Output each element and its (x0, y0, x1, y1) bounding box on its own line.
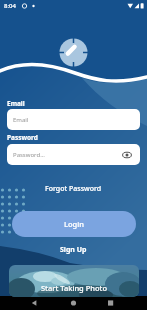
staticText: Login (64, 219, 84, 229)
button[interactable]: Login (12, 211, 136, 237)
staticText: Email (13, 116, 29, 124)
button[interactable] (49, 296, 98, 310)
button[interactable]: Forgot Password (0, 184, 147, 194)
staticText: 8:04 (4, 2, 16, 10)
button[interactable]: Email (7, 109, 140, 130)
staticText: Password (7, 133, 38, 142)
staticText: Email (7, 99, 25, 108)
staticText: Forgot Password (45, 184, 102, 194)
button[interactable] (0, 296, 49, 310)
button[interactable]: Password... (7, 144, 140, 165)
staticText: Start Taking Photo (41, 283, 108, 293)
button[interactable] (98, 296, 147, 310)
staticText: Password... (13, 151, 45, 159)
button[interactable]: Start Taking Photo (9, 265, 139, 297)
staticText: Sign Up (60, 245, 87, 255)
button[interactable]: Sign Up (0, 245, 147, 255)
button[interactable] (122, 150, 132, 160)
